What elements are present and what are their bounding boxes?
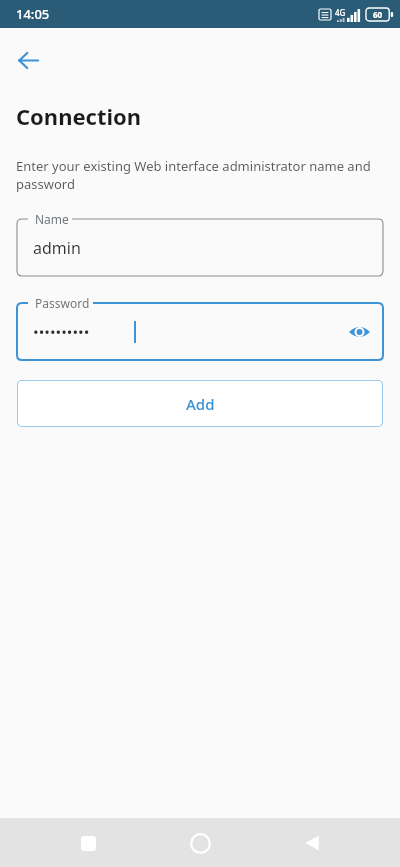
button[interactable]: Recents <box>64 819 112 867</box>
staticText: 14:05 <box>16 5 50 23</box>
button[interactable]: Back <box>9 41 47 79</box>
staticText: Enter your existing Web interface admini… <box>16 157 372 193</box>
staticText: Add <box>186 394 215 414</box>
staticText: •••••••••• <box>33 322 90 342</box>
button[interactable]: Add <box>17 380 383 427</box>
staticText: 60 <box>373 9 383 20</box>
staticText: Password <box>35 295 90 311</box>
staticText: Name <box>35 211 69 227</box>
staticText: Connection <box>16 101 142 131</box>
button[interactable]: Name <box>17 219 383 276</box>
staticText: 4G <box>335 7 346 18</box>
button[interactable]: Show password <box>341 314 377 350</box>
button[interactable]: Home <box>176 819 224 867</box>
button[interactable]: Password <box>17 303 383 360</box>
button[interactable]: Back <box>288 819 336 867</box>
staticText: admin <box>33 237 81 259</box>
